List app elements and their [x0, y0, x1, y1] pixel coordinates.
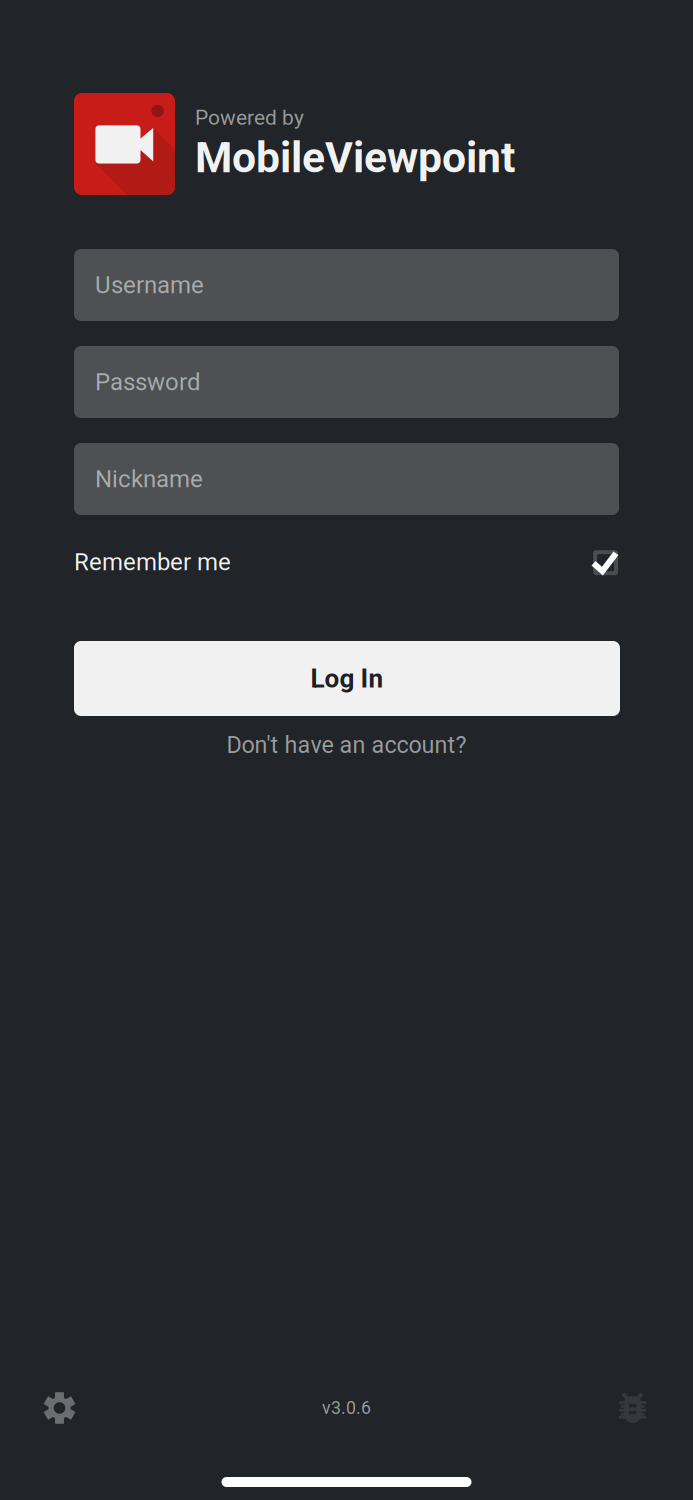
staticText: Password	[95, 368, 201, 396]
button[interactable]: Report a bug	[619, 1392, 646, 1423]
staticText: Don't have an account?	[226, 731, 466, 759]
button[interactable]: Username	[74, 249, 619, 321]
staticText: Remember me	[74, 548, 231, 576]
button[interactable]: Don't have an account?	[226, 716, 466, 774]
staticText: Username	[95, 271, 204, 299]
staticText: Nickname	[95, 465, 203, 493]
button[interactable]: Nickname	[74, 443, 619, 515]
staticText: Powered by	[195, 105, 304, 130]
staticText: Log In	[310, 663, 383, 694]
staticText: MobileViewpoint	[195, 133, 515, 183]
button[interactable]: Log In	[74, 641, 620, 716]
button[interactable]: Password	[74, 346, 619, 418]
button[interactable]: Settings	[42, 1391, 76, 1425]
button[interactable]: Remember me	[74, 538, 619, 586]
staticText: v3.0.6	[322, 1398, 371, 1418]
